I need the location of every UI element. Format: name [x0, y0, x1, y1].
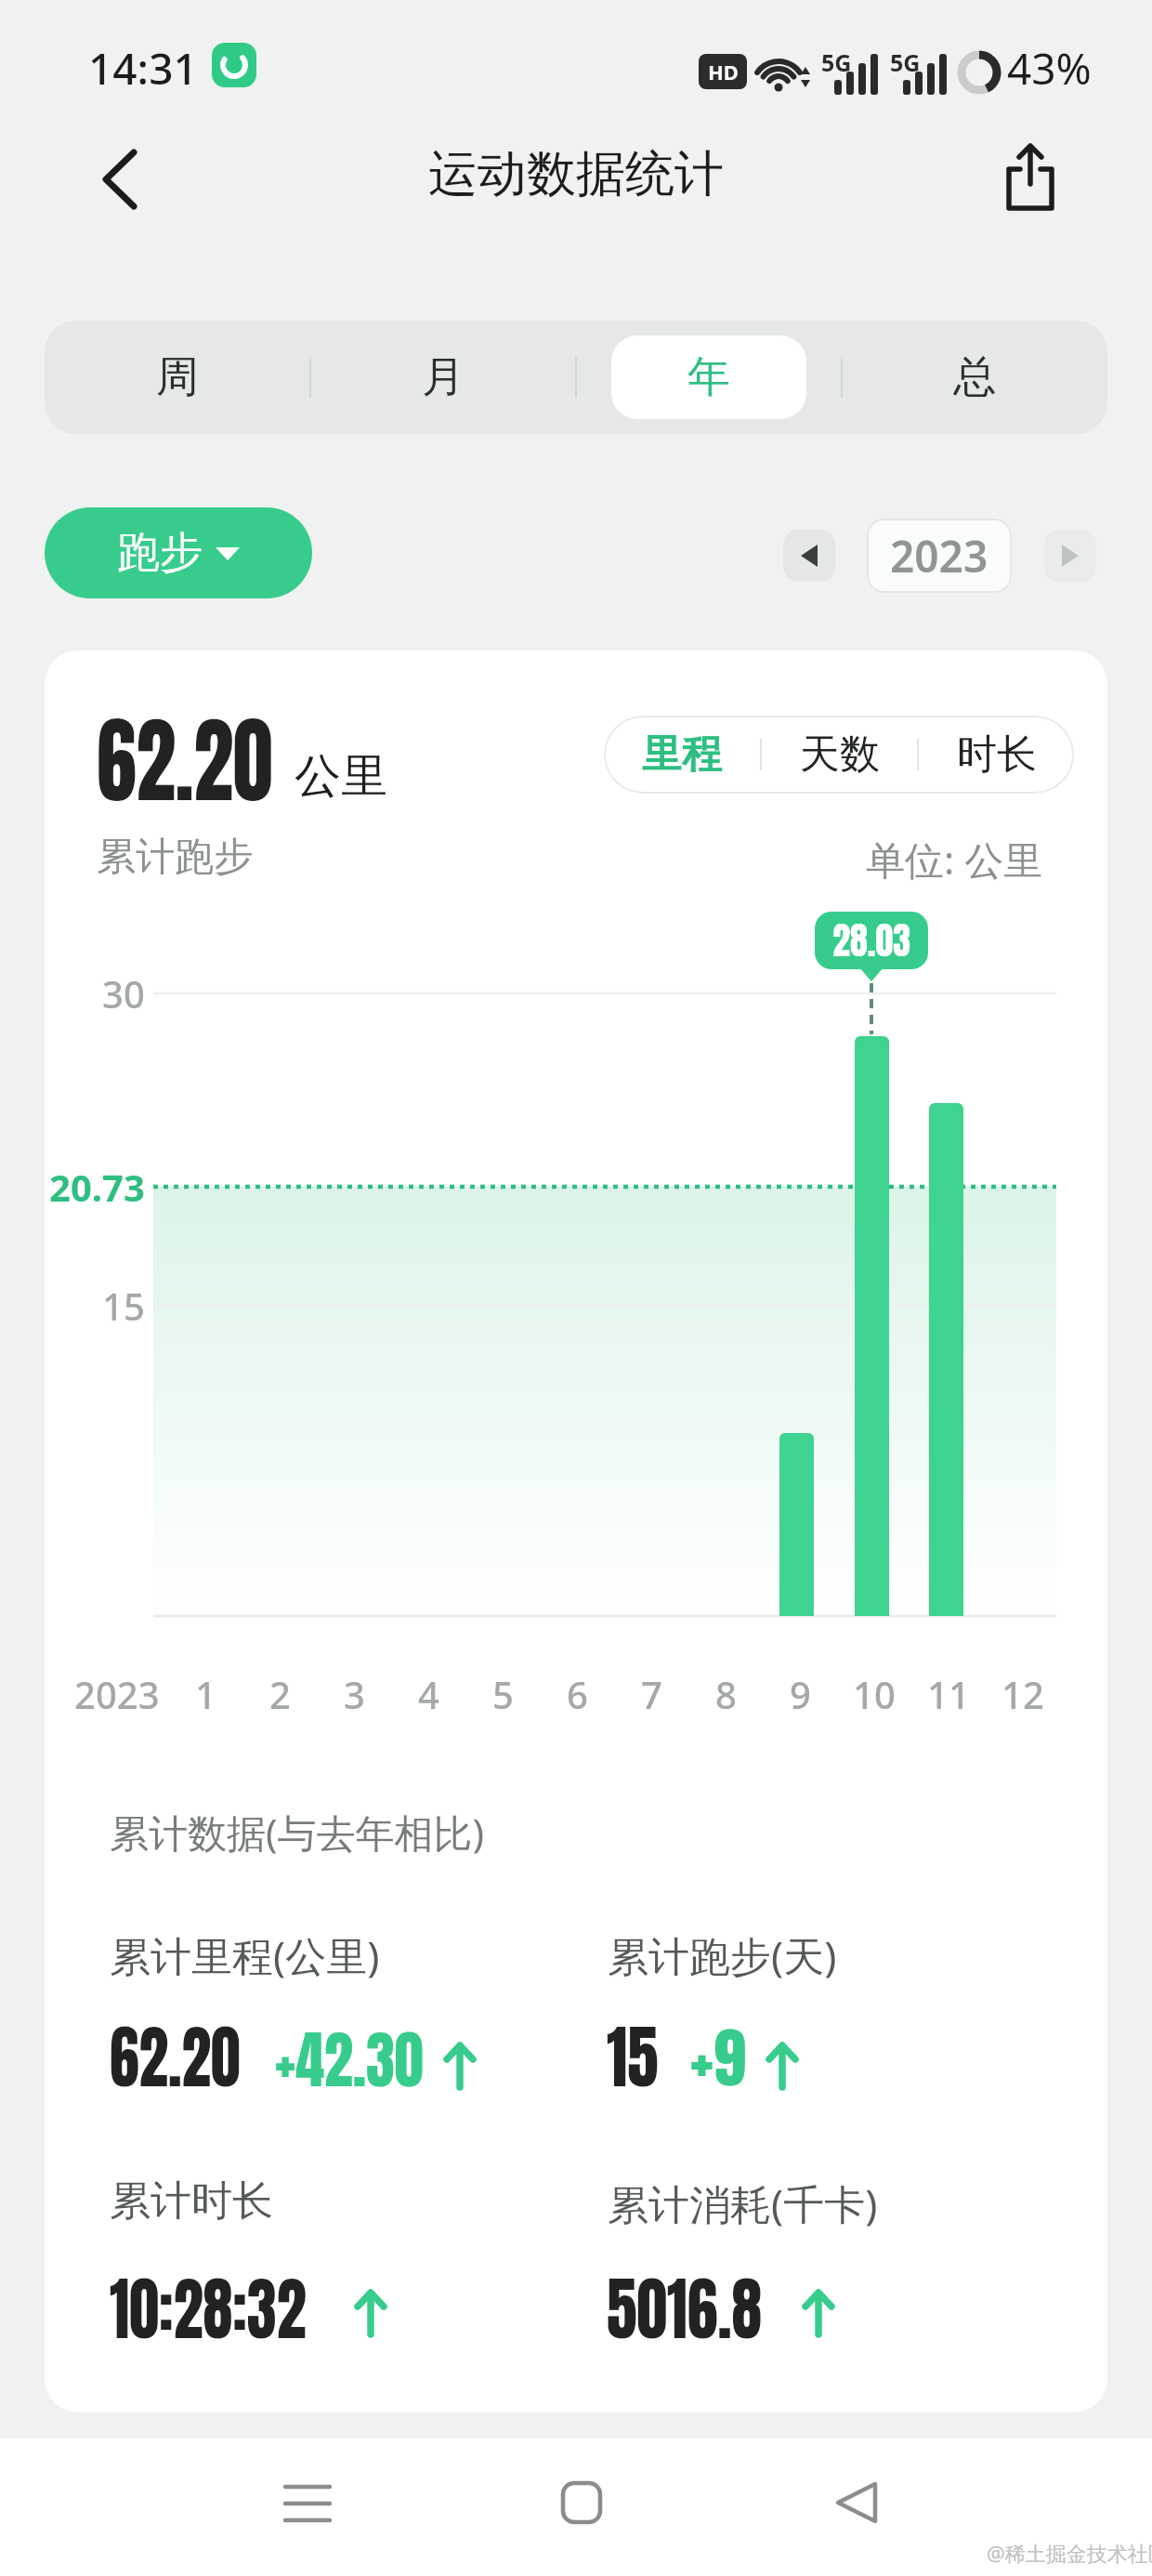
staticText: 2023 — [890, 527, 988, 585]
button[interactable] — [1044, 530, 1096, 582]
button[interactable]: 跑步 — [45, 507, 312, 598]
staticText: 里程 — [642, 729, 722, 780]
staticText: 时长 — [957, 729, 1037, 780]
staticText: 43% — [1007, 39, 1092, 98]
staticText: +9 — [690, 2009, 746, 2107]
staticText: 3 — [344, 1669, 365, 1719]
button[interactable] — [783, 530, 835, 582]
button[interactable]: 2023 — [867, 519, 1012, 593]
staticText: @稀土掘金技术社区 — [987, 2539, 1152, 2567]
staticText: 2023 — [74, 1669, 160, 1719]
staticText: 累计跑步 — [97, 833, 253, 882]
staticText: 月 — [422, 350, 465, 404]
button[interactable] — [1001, 141, 1059, 214]
staticText: 单位: 公里 — [866, 833, 1043, 886]
button[interactable]: 月 — [310, 321, 576, 434]
staticText: 5 — [492, 1669, 514, 1719]
button[interactable]: 时长 — [919, 716, 1074, 794]
staticText: 10:28:32 — [110, 2257, 307, 2360]
staticText: 累计里程(公里) — [110, 1927, 380, 1983]
button[interactable]: 天数 — [762, 716, 917, 794]
staticText: 5G — [890, 46, 921, 78]
button[interactable]: 周 — [45, 321, 310, 434]
staticText: 累计消耗(千卡) — [608, 2175, 878, 2231]
button[interactable] — [285, 2483, 330, 2524]
staticText: 5G — [821, 46, 852, 78]
staticText: 30 — [102, 968, 145, 1019]
staticText: 运动数据统计 — [428, 143, 724, 205]
staticText: 1 — [195, 1669, 216, 1719]
staticText: 累计数据(与去年相比) — [110, 1806, 485, 1859]
staticText: 天数 — [800, 729, 880, 780]
staticText: 总 — [953, 350, 996, 404]
staticText: 年 — [687, 350, 730, 404]
staticText: 62.20 — [110, 2005, 241, 2109]
staticText: 跑步 — [117, 526, 203, 580]
staticText: 10 — [853, 1669, 896, 1719]
staticText: 8 — [715, 1669, 737, 1719]
staticText: 累计跑步(天) — [608, 1927, 837, 1983]
staticText: 14:31 — [88, 39, 198, 98]
staticText: 6 — [567, 1669, 588, 1719]
button[interactable]: 总 — [842, 321, 1107, 434]
staticText: 11 — [927, 1669, 970, 1719]
staticText: 4 — [418, 1669, 439, 1719]
staticText: 周 — [156, 350, 199, 404]
staticText: 15 — [607, 2005, 659, 2109]
staticText: 2 — [269, 1669, 291, 1719]
staticText: 28.03 — [833, 913, 911, 968]
staticText: 12 — [1001, 1669, 1044, 1719]
staticText: 累计时长 — [110, 2175, 273, 2227]
button[interactable] — [834, 2482, 879, 2523]
staticText: +42.30 — [275, 2013, 424, 2107]
button[interactable]: 年 — [576, 321, 842, 434]
button[interactable]: 里程 — [604, 716, 760, 794]
staticText: 15 — [102, 1281, 145, 1331]
staticText: 20.73 — [49, 1162, 145, 1212]
staticText: 5016.8 — [607, 2257, 762, 2360]
button[interactable] — [561, 2481, 602, 2524]
staticText: 公里 — [295, 747, 387, 806]
staticText: HD — [708, 58, 739, 85]
staticText: 62.20 — [97, 690, 273, 831]
button[interactable] — [97, 147, 145, 212]
staticText: 7 — [641, 1669, 662, 1719]
staticText: 9 — [790, 1669, 811, 1719]
